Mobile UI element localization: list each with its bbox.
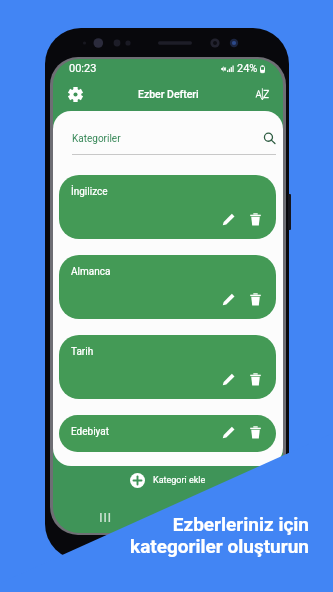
staticText: Kategori ekle (153, 475, 206, 486)
staticText: Almanca (71, 266, 111, 278)
button[interactable]: Delete (250, 373, 261, 386)
button[interactable]: Search (263, 132, 276, 145)
staticText: Edebiyat (71, 426, 109, 438)
staticText: Ezberleriniz için (172, 513, 309, 535)
button[interactable]: Edit (222, 373, 235, 386)
button[interactable]: Edebiyat (59, 415, 276, 452)
staticText: kategoriler oluşturun (129, 535, 309, 557)
staticText: 24% (237, 62, 258, 75)
button[interactable]: Almanca (59, 255, 276, 319)
button[interactable]: Edit (222, 426, 235, 439)
staticText: İngilizce (71, 186, 108, 198)
staticText: Tarih (71, 346, 94, 358)
button[interactable]: İngilizce (59, 175, 276, 239)
staticText: Ezber Defteri (138, 88, 199, 100)
button[interactable]: Delete (250, 426, 261, 439)
button[interactable]: Tarih (59, 335, 276, 399)
staticText: 00:23 (69, 62, 97, 75)
button[interactable]: Delete (250, 213, 261, 226)
button[interactable]: Delete (250, 293, 261, 306)
button[interactable]: Edit (222, 213, 235, 226)
button[interactable]: Sort A to Z (256, 88, 269, 100)
staticText: Kategoriler (72, 133, 121, 145)
button[interactable]: Kategori ekle (53, 473, 283, 488)
button[interactable]: Settings (68, 87, 83, 102)
button[interactable]: Edit (222, 293, 235, 306)
